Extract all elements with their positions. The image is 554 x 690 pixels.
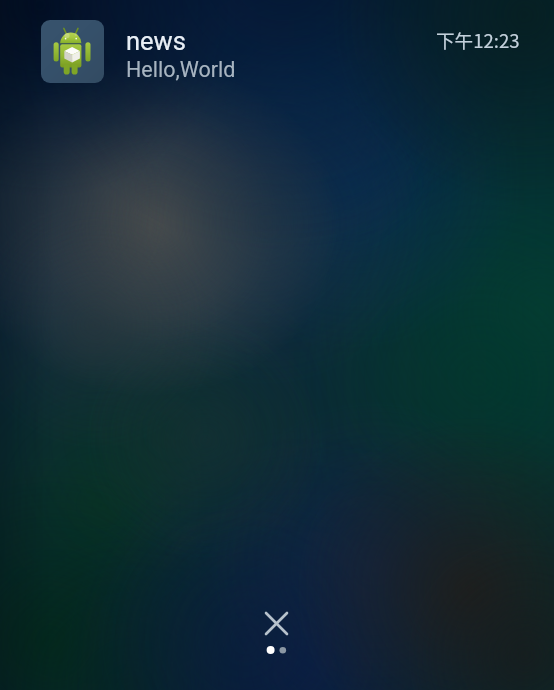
button[interactable]: news bbox=[0, 0, 554, 104]
staticText: Hello,World bbox=[126, 57, 236, 82]
staticText: news bbox=[126, 26, 186, 56]
button[interactable]: Close notification bbox=[256, 603, 296, 643]
staticText: 下午12:23 bbox=[436, 26, 520, 53]
